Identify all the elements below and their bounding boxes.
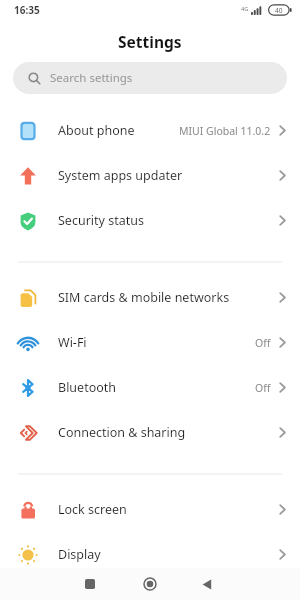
staticText: Off: [255, 336, 271, 350]
staticText: Off: [255, 381, 271, 395]
staticText: Connection & sharing: [58, 424, 186, 441]
button[interactable]: Display: [0, 532, 300, 577]
staticText: System apps updater: [58, 167, 183, 184]
staticText: 16:35: [14, 3, 40, 17]
staticText: MIUI Global 11.0.2: [179, 124, 271, 138]
staticText: 4G: [241, 5, 249, 12]
button[interactable]: Wi-Fi: [0, 320, 300, 365]
button[interactable]: Search settings: [13, 62, 287, 94]
button[interactable]: Security status: [0, 198, 300, 243]
staticText: About phone: [58, 122, 135, 139]
staticText: 40: [275, 6, 283, 15]
staticText: Lock screen: [58, 501, 127, 518]
button[interactable]: System apps updater: [0, 153, 300, 198]
button[interactable]: About phone: [0, 108, 300, 153]
button[interactable]: [187, 568, 227, 600]
staticText: Settings: [118, 31, 182, 52]
staticText: SIM cards & mobile networks: [58, 289, 230, 306]
staticText: Bluetooth: [58, 379, 117, 396]
staticText: Security status: [58, 212, 144, 229]
button[interactable]: SIM cards & mobile networks: [0, 275, 300, 320]
button[interactable]: [70, 568, 110, 600]
button[interactable]: Lock screen: [0, 487, 300, 532]
staticText: Wi-Fi: [58, 334, 87, 351]
staticText: Search settings: [50, 70, 133, 86]
staticText: Display: [58, 546, 101, 563]
button[interactable]: Bluetooth: [0, 365, 300, 410]
button[interactable]: Connection & sharing: [0, 410, 300, 455]
button[interactable]: [130, 568, 170, 600]
